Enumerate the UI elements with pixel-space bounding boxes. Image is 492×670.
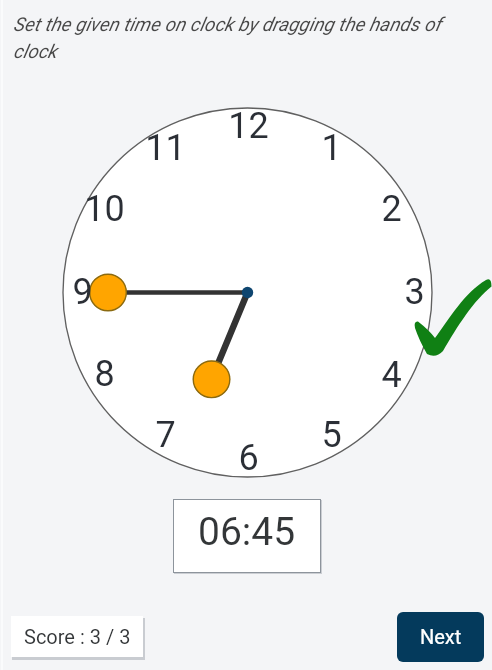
staticText: Set the given time on clock by dragging … [13,13,468,63]
staticText: 6 [238,437,259,479]
button[interactable]: Drag minute hand [89,274,126,311]
staticText: Next [420,625,462,648]
staticText: 4 [381,354,402,396]
button[interactable]: Drag hour hand [193,361,230,398]
staticText: 1 [321,127,342,169]
staticText: 7 [155,414,176,456]
staticText: 11 [145,127,186,169]
button[interactable]: Next [397,612,484,662]
staticText: 06:45 [198,509,296,555]
staticText: 10 [84,188,125,230]
button[interactable]: 06:45 [173,499,321,573]
staticText: 8 [94,353,115,395]
button[interactable]: Score : 3 / 3 [11,616,143,657]
staticText: Score : 3 / 3 [24,625,131,648]
staticText: 9 [72,271,93,313]
staticText: 5 [321,414,342,456]
staticText: 3 [404,271,425,313]
staticText: 12 [228,105,269,147]
staticText: 2 [381,188,402,230]
